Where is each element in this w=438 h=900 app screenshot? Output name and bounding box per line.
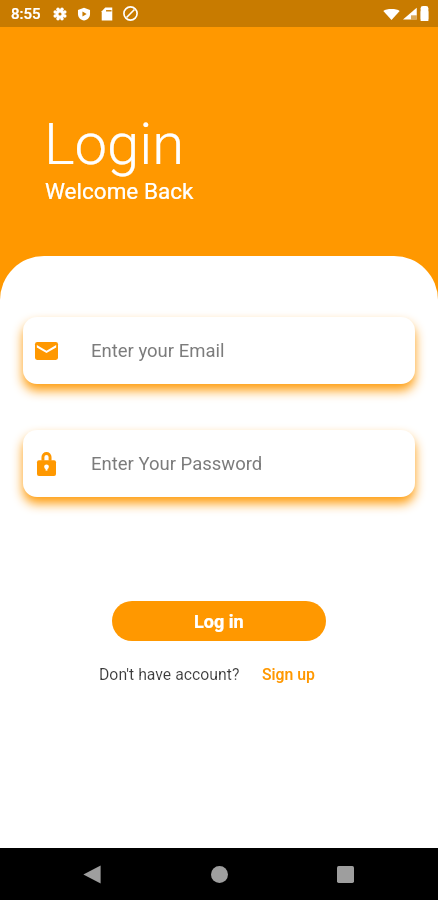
button[interactable]: Enter Your Password — [23, 430, 415, 497]
staticText: Login — [44, 110, 185, 178]
staticText: 8:55 — [11, 5, 41, 23]
staticText: Welcome Back — [45, 178, 194, 204]
staticText: Don't have account? — [99, 665, 240, 684]
staticText: Enter Your Password — [91, 453, 263, 475]
button[interactable]: Back — [54, 848, 130, 900]
button[interactable]: Log in — [112, 601, 326, 641]
staticText: Enter your Email — [91, 340, 225, 362]
button[interactable]: Sign up — [260, 661, 317, 688]
button[interactable]: Enter your Email — [23, 317, 415, 384]
button[interactable]: Home — [182, 848, 257, 900]
staticText: Sign up — [262, 665, 315, 684]
button[interactable]: Recent apps — [308, 848, 383, 900]
staticText: Log in — [194, 611, 244, 632]
